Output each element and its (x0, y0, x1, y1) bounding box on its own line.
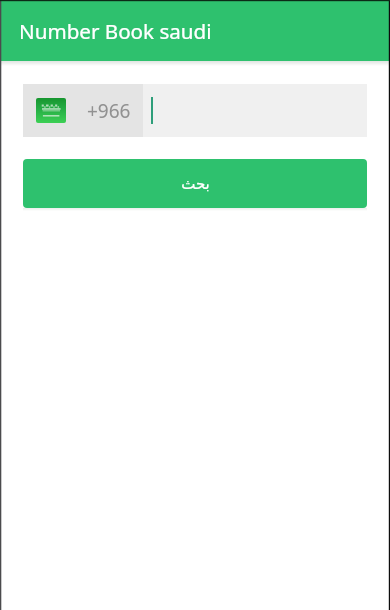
button[interactable]: Phone number (143, 84, 367, 137)
button[interactable]: Select country code (23, 84, 143, 137)
other: Saudi Arabia flag (36, 98, 66, 123)
staticText: بحث (181, 175, 210, 192)
staticText: Number Book saudi (19, 17, 212, 45)
button[interactable]: بحث (23, 159, 367, 208)
staticText: +966 (87, 98, 131, 124)
